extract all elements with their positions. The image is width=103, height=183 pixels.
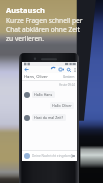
button[interactable]: Call — [49, 66, 57, 73]
staticText: Hallo Hans — [34, 92, 53, 97]
staticText: Gestern — [63, 75, 75, 79]
staticText: Hast du mal Zeit? — [34, 115, 64, 120]
button[interactable]: Hallo Oliver — [52, 103, 72, 108]
button[interactable]: Send — [71, 153, 75, 159]
button[interactable]: Hans, Oliver — [24, 73, 75, 80]
button[interactable]: Hast du mal Zeit? — [24, 114, 77, 121]
button[interactable]: More options — [72, 66, 77, 73]
button[interactable]: Search — [65, 66, 72, 73]
staticText: Hans, Oliver — [24, 74, 48, 80]
staticText: Hallo Oliver — [52, 103, 72, 108]
button[interactable]: Back — [22, 66, 30, 73]
staticText: Kurze Fragen schnell per Chat abklären o… — [6, 16, 83, 43]
button[interactable]: Video call — [57, 66, 65, 73]
staticText: Austausch — [6, 5, 45, 15]
staticText: Heute 09:24 — [59, 83, 75, 87]
staticText: Deine Nachricht eingeben — [32, 154, 71, 158]
button[interactable]: Hallo Hans — [24, 91, 77, 98]
button[interactable]: Profile — [24, 153, 30, 159]
